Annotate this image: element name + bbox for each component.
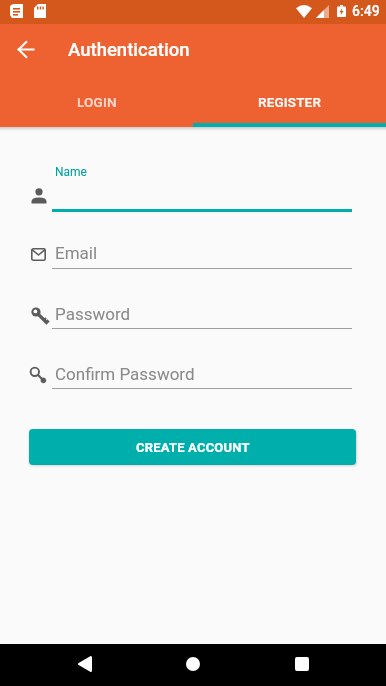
staticText: LOGIN [77,94,117,110]
button[interactable]: LOGIN [0,74,193,127]
button[interactable] [10,33,42,65]
button[interactable] [67,646,103,682]
staticText: Authentication [68,39,190,61]
staticText: CREATE ACCOUNT [136,440,250,455]
button[interactable] [175,646,211,682]
staticText: 6:49 [352,3,380,19]
button[interactable]: REGISTER [193,74,386,127]
staticText: REGISTER [258,94,322,110]
staticText: Name [55,165,87,179]
button[interactable] [284,646,320,682]
staticText: Email [55,243,98,263]
button[interactable]: CREATE ACCOUNT [29,429,356,465]
staticText: Confirm Password [55,364,195,384]
staticText: Password [55,304,131,324]
